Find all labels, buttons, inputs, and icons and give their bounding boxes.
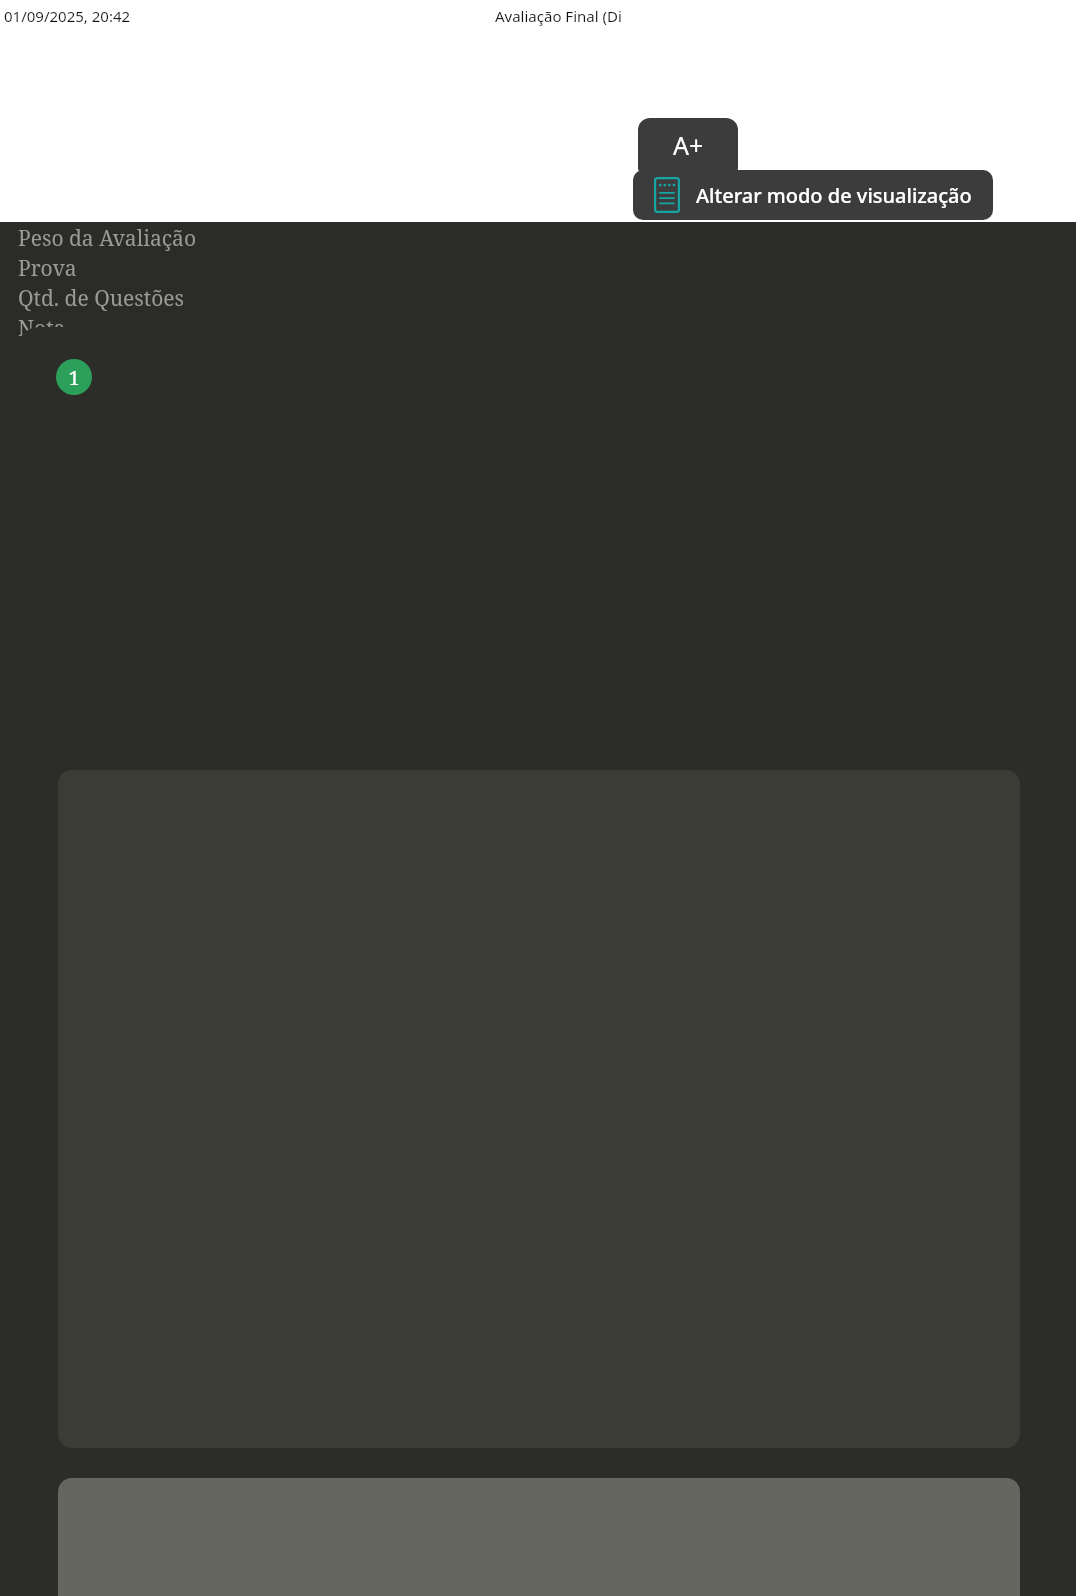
staticText: Avaliação Final (Di — [495, 6, 622, 26]
button[interactable]: 1 — [56, 359, 92, 395]
staticText: A+ — [673, 128, 704, 162]
staticText: Peso da Avaliação — [18, 224, 196, 253]
staticText: 1 — [68, 364, 80, 391]
staticText: Alterar modo de visualização — [696, 182, 972, 209]
staticText: Nota — [18, 314, 66, 343]
staticText: 01/09/2025, 20:42 — [4, 6, 131, 26]
button[interactable]: 1 — [17, 327, 1065, 1596]
staticText: Qtd. de Questões — [18, 284, 185, 313]
button[interactable]: Alterar modo de visualização — [633, 170, 993, 220]
button[interactable]: A+ — [638, 118, 738, 172]
staticText: Prova — [18, 254, 77, 283]
